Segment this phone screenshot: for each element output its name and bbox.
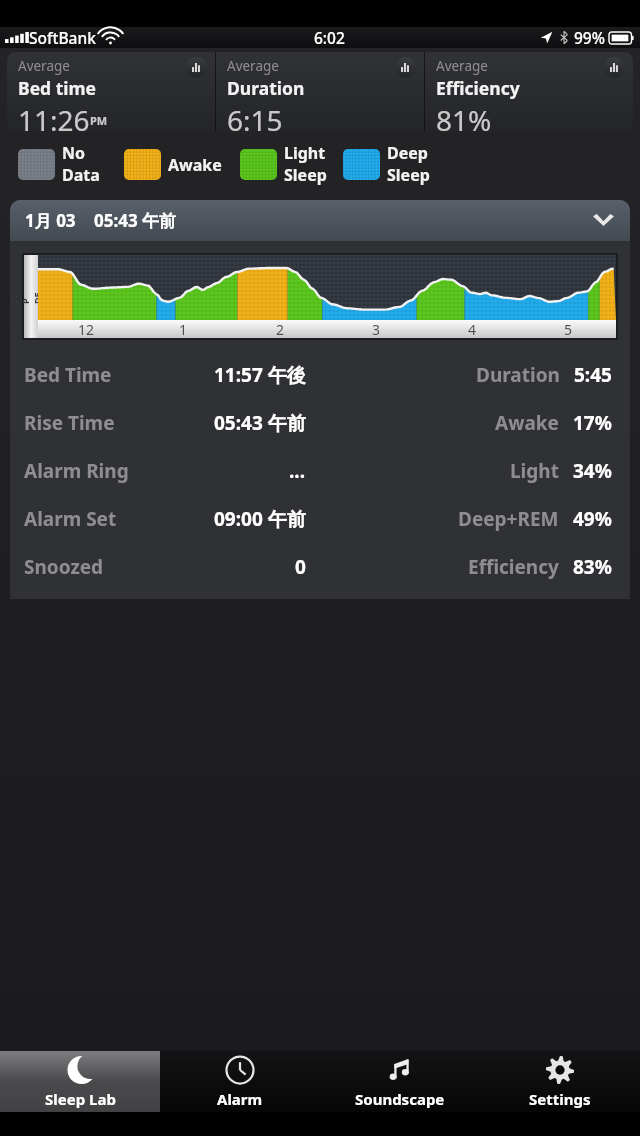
staticText: Alarm Set [24, 506, 117, 532]
staticText: Sleep [387, 164, 430, 186]
staticText: 49% [573, 506, 612, 532]
staticText: Alarm [217, 1089, 263, 1109]
staticText: Deep+REM [458, 506, 559, 532]
staticText: Bed Time [24, 362, 112, 388]
staticText: 83% [573, 554, 612, 580]
staticText: Soundscape [355, 1089, 445, 1109]
staticText: 34% [573, 458, 612, 484]
staticText: 05:43 午前 [214, 410, 306, 436]
staticText: Rise Time [24, 410, 115, 436]
button[interactable]: Soundscape [320, 1051, 480, 1112]
button[interactable]: Sleep Lab [0, 1051, 160, 1112]
staticText: Bed time [18, 76, 97, 100]
staticText: Light [510, 458, 559, 484]
button[interactable]: 1月 03 [10, 200, 630, 241]
staticText: 1月 03 [25, 209, 76, 232]
staticText: Awake [168, 154, 222, 176]
staticText: 5 [564, 320, 573, 338]
staticText: 81% [436, 101, 492, 132]
staticText: ... [289, 458, 306, 484]
staticText: 05:43 午前 [94, 209, 177, 232]
staticText: 3 [372, 320, 381, 338]
staticText: 2 [276, 320, 285, 338]
staticText: Settings [529, 1089, 591, 1109]
staticText: Duration [476, 362, 560, 388]
staticText: No [62, 142, 86, 164]
staticText: Sleep Lab [45, 1089, 116, 1109]
button[interactable]: Duration chart [395, 57, 416, 78]
staticText: Light [284, 142, 326, 164]
staticText: 6:15 [227, 101, 283, 132]
staticText: SoftBank [29, 27, 96, 48]
staticText: Average [436, 57, 488, 75]
staticText: 11:57 午後 [214, 362, 306, 388]
staticText: Alarm Ring [24, 458, 129, 484]
button[interactable]: Settings [480, 1051, 640, 1112]
staticText: Sleep [284, 164, 327, 186]
staticText: Efficiency [468, 554, 559, 580]
staticText: 5:45 [574, 362, 612, 388]
button[interactable]: Bed time chart [186, 57, 207, 78]
button[interactable]: Alarm [160, 1051, 320, 1112]
button[interactable]: Average [216, 52, 424, 132]
staticText: 11:26 [18, 101, 90, 132]
staticText: PM [90, 113, 108, 128]
staticText: 09:00 午前 [214, 506, 306, 532]
staticText: SLEEP DEPTH [10, 290, 67, 304]
staticText: 12 [78, 320, 95, 338]
staticText: Average [18, 57, 70, 75]
staticText: Awake [495, 410, 559, 436]
staticText: Duration [227, 76, 305, 100]
staticText: Efficiency [436, 76, 520, 100]
staticText: Data [62, 164, 100, 186]
staticText: Deep [387, 142, 428, 164]
staticText: 99% [574, 27, 605, 48]
staticText: 4 [468, 320, 477, 338]
staticText: Snoozed [24, 554, 104, 580]
button[interactable]: Average [7, 52, 215, 132]
staticText: 17% [573, 410, 612, 436]
staticText: 0 [295, 554, 306, 580]
button[interactable]: Average [425, 52, 633, 132]
staticText: Average [227, 57, 279, 75]
staticText: 1 [179, 320, 188, 338]
button[interactable]: Efficiency chart [604, 57, 625, 78]
staticText: 6:02 [314, 27, 345, 48]
